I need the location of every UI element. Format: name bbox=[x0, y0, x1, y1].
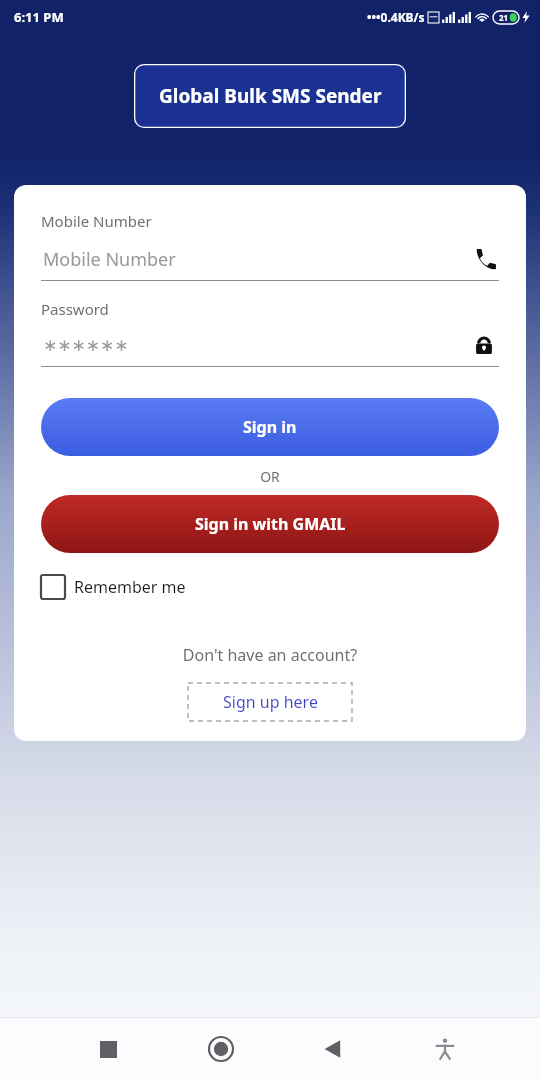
button[interactable]: Global Bulk SMS Sender bbox=[134, 64, 406, 128]
staticText: Password bbox=[41, 299, 109, 319]
staticText: OR bbox=[41, 467, 499, 486]
button[interactable]: Sign up here bbox=[188, 683, 352, 721]
staticText: •••0.4KB/s bbox=[367, 9, 425, 25]
staticText: Remember me bbox=[74, 576, 186, 598]
button[interactable]: Accessibility bbox=[419, 1023, 471, 1075]
staticText: Global Bulk SMS Sender bbox=[159, 83, 382, 109]
staticText: Sign in with GMAIL bbox=[195, 513, 346, 535]
staticText: Sign in bbox=[243, 416, 297, 438]
button[interactable]: Back bbox=[307, 1023, 359, 1075]
other: Password bbox=[469, 330, 499, 360]
button[interactable]: Sign in bbox=[41, 398, 499, 456]
staticText: 6:11 PM bbox=[14, 8, 64, 26]
staticText: ∗∗∗∗∗∗ bbox=[43, 335, 469, 355]
button[interactable]: Recents bbox=[82, 1023, 134, 1075]
staticText: Sign up here bbox=[223, 691, 318, 713]
staticText: 21 bbox=[499, 12, 509, 23]
staticText: Mobile Number bbox=[41, 211, 152, 231]
button[interactable]: Remember me bbox=[41, 573, 186, 601]
other: Phone bbox=[469, 244, 499, 274]
staticText: Don't have an account? bbox=[41, 644, 499, 666]
staticText: Mobile Number bbox=[43, 247, 469, 272]
button[interactable]: Mobile Number bbox=[41, 241, 499, 281]
button[interactable]: Sign in with GMAIL bbox=[41, 495, 499, 553]
button[interactable]: ∗∗∗∗∗∗ bbox=[41, 327, 499, 367]
button[interactable]: Home bbox=[195, 1023, 247, 1075]
